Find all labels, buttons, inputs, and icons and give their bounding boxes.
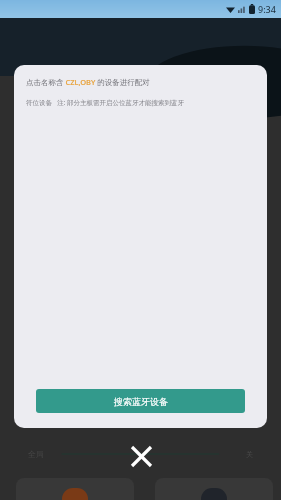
button[interactable] [62, 447, 240, 461]
button[interactable]: 搜索蓝牙设备 [36, 389, 245, 413]
staticText: 符位设备 注: 部分主板需开启公位蓝牙才能搜索到蓝牙 [26, 98, 185, 107]
staticText: 关 [246, 450, 253, 459]
button[interactable] [16, 478, 134, 500]
button[interactable] [155, 478, 273, 500]
button[interactable]: Close [125, 440, 157, 472]
staticText: 全局 [28, 449, 44, 459]
staticText: 点击名称含 CZL,OBY 的设备进行配对 [26, 77, 150, 87]
staticText: 搜索蓝牙设备 [114, 396, 168, 407]
staticText: 9:34 [258, 3, 276, 15]
